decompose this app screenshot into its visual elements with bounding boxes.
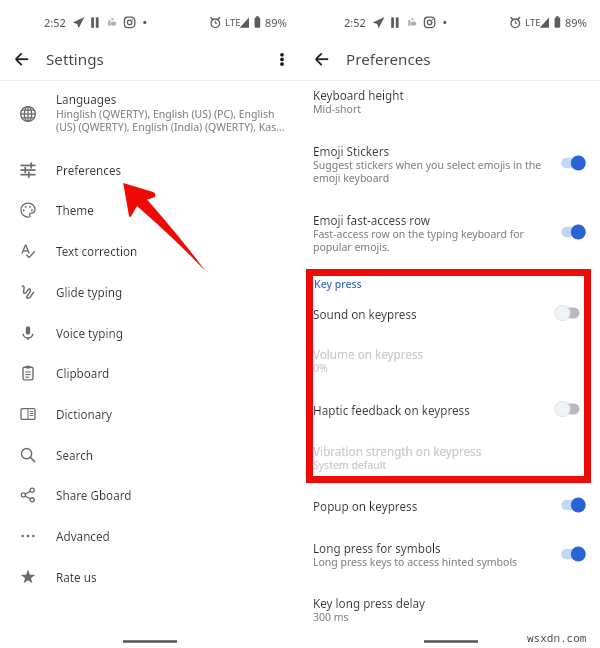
button[interactable]: Clipboard	[0, 353, 300, 394]
button[interactable]: Keyboard height	[300, 85, 600, 131]
button[interactable]: Popup on keypress	[545, 492, 581, 518]
staticText: Advanced	[56, 528, 110, 544]
staticText: 2:52	[344, 15, 366, 30]
button[interactable]: Volume on keypress	[300, 344, 600, 390]
staticText: Long press for symbols	[313, 540, 441, 556]
button[interactable]: Preferences	[0, 150, 300, 191]
staticText: LTE	[225, 16, 241, 29]
staticText: Preferences	[56, 162, 122, 178]
staticText: LTE	[525, 16, 541, 29]
button[interactable]: Share Gboard	[0, 475, 300, 516]
button[interactable]: Advanced	[0, 516, 300, 557]
button[interactable]: Haptic feedback on keypress	[300, 400, 600, 434]
button[interactable]: More options	[269, 46, 295, 72]
staticText: Search	[56, 447, 93, 463]
staticText: 300 ms	[313, 610, 349, 624]
staticText: Glide typing	[56, 284, 123, 300]
button[interactable]: Back	[6, 42, 38, 74]
button[interactable]: Emoji Stickers	[300, 141, 600, 187]
button[interactable]: Glide typing	[0, 272, 300, 313]
staticText: Long press keys to access hinted symbols	[313, 555, 518, 569]
button[interactable]: Text correction	[0, 231, 300, 272]
staticText: Volume on keypress	[313, 346, 424, 362]
staticText: Sound on keypress	[313, 306, 417, 322]
staticText: Emoji Stickers	[313, 143, 390, 159]
staticText: 0%	[313, 361, 328, 375]
button[interactable]: Sound on keypress	[545, 300, 581, 326]
button[interactable]: Emoji Stickers	[545, 150, 581, 176]
staticText: Keyboard height	[313, 87, 404, 103]
staticText: Key long press delay	[313, 595, 426, 611]
staticText: Theme	[56, 202, 94, 218]
button[interactable]: Voice typing	[0, 313, 300, 354]
button[interactable]: Key long press delay	[300, 593, 600, 639]
staticText: Dictionary	[56, 406, 113, 422]
staticText: Popup on keypress	[313, 498, 418, 514]
staticText: Rate us	[56, 569, 97, 585]
staticText: Hinglish (QWERTY), English (US) (PC), En…	[56, 107, 285, 134]
staticText: wsxdn.com	[527, 630, 587, 645]
button[interactable]: Search	[0, 435, 300, 476]
staticText: Settings	[46, 49, 104, 70]
staticText: Voice typing	[56, 325, 123, 341]
staticText: Mid-short	[313, 102, 362, 116]
button[interactable]: Popup on keypress	[300, 496, 600, 530]
staticText: Emoji fast-access row	[313, 212, 430, 228]
staticText: Suggest stickers when you select emojis …	[313, 158, 542, 185]
button[interactable]: Dictionary	[0, 394, 300, 435]
staticText: Fast-access row on the typing keyboard f…	[313, 227, 524, 254]
staticText: 2:52	[44, 15, 66, 30]
button[interactable]: Emoji fast-access row	[300, 210, 600, 256]
button[interactable]: Sound on keypress	[300, 304, 600, 338]
staticText: Share Gboard	[56, 487, 132, 503]
button[interactable]: Long press for symbols	[300, 538, 600, 584]
staticText: 89%	[265, 15, 287, 30]
button[interactable]: Theme	[0, 190, 300, 231]
staticText: 89%	[565, 15, 587, 30]
staticText: Preferences	[346, 49, 431, 70]
staticText: Haptic feedback on keypress	[313, 402, 470, 418]
button[interactable]: Long press for symbols	[545, 541, 581, 567]
button[interactable]: Vibration strength on keypress	[300, 441, 600, 487]
staticText: Key press	[314, 277, 362, 291]
button[interactable]: Haptic feedback on keypress	[545, 396, 581, 422]
staticText: Text correction	[56, 243, 138, 259]
staticText: Clipboard	[56, 365, 110, 381]
staticText: Vibration strength on keypress	[313, 443, 482, 459]
button[interactable]: Languages	[0, 84, 300, 142]
button[interactable]: Emoji fast-access row	[545, 219, 581, 245]
staticText: System default	[313, 458, 387, 472]
button[interactable]: Back	[306, 42, 338, 74]
button[interactable]: Rate us	[0, 557, 300, 598]
staticText: Languages	[56, 91, 117, 107]
